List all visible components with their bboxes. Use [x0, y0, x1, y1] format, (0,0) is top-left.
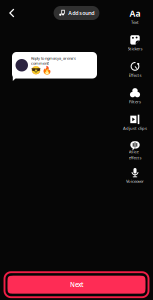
button[interactable]: Voiceover	[118, 162, 151, 188]
staticText: Effects	[128, 72, 141, 78]
staticText: Next	[70, 280, 83, 289]
button[interactable]: Add sound	[54, 6, 99, 20]
button[interactable]: Effects	[118, 56, 151, 82]
button[interactable]: Next	[3, 271, 149, 298]
staticText: comment!	[31, 61, 49, 66]
staticText: Voiceover	[126, 178, 144, 184]
staticText: Stickers	[127, 46, 142, 51]
button[interactable]: Adjust clips	[118, 109, 151, 135]
staticText: Reply to ngmasya_arena's	[31, 56, 76, 61]
staticText: Text	[131, 19, 139, 25]
button[interactable]: Filters	[118, 82, 151, 109]
button[interactable]: Aa	[118, 3, 151, 29]
staticText: Add sound	[68, 9, 94, 17]
staticText: Aa	[129, 8, 140, 19]
button[interactable]: Stickers	[118, 29, 151, 56]
staticText: Voice effects	[128, 149, 141, 160]
staticText: Filters	[129, 99, 141, 104]
staticText: 😎	[31, 65, 41, 75]
button[interactable]: Back	[2, 4, 22, 22]
staticText: Adjust clips	[123, 125, 147, 131]
button[interactable]: Voice effects	[118, 135, 151, 162]
staticText: 🔥	[42, 65, 52, 75]
